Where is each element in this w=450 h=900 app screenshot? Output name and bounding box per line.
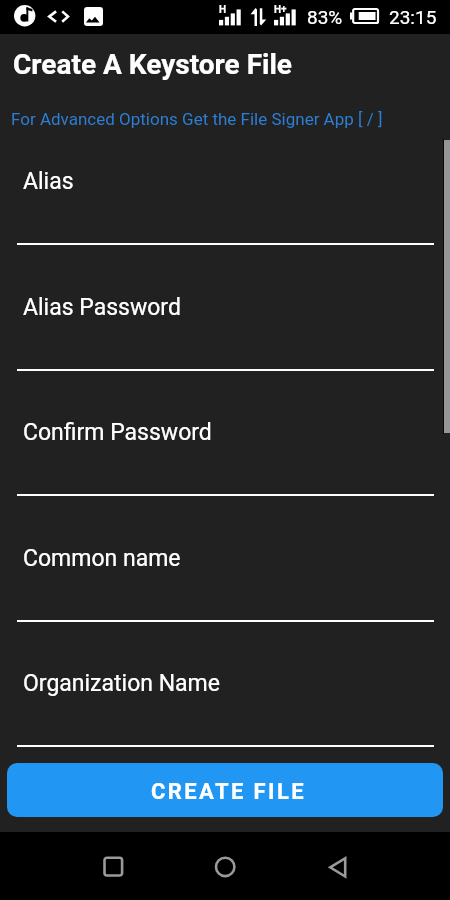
button[interactable]: Organization Name [0, 667, 450, 699]
staticText: Create A Keystore File [13, 48, 293, 81]
staticText: Common name [23, 545, 181, 572]
button[interactable]: Back [314, 842, 362, 890]
staticText: Confirm Password [23, 419, 212, 446]
button[interactable]: Alias Password [0, 291, 450, 323]
staticText: CREATE FILE [151, 779, 306, 805]
staticText: Alias [23, 168, 74, 195]
button[interactable]: CREATE FILE [7, 763, 443, 817]
button[interactable]: Alias [0, 165, 450, 197]
staticText: 83% [307, 6, 343, 28]
button[interactable]: Recents [89, 842, 137, 890]
button[interactable]: Common name [0, 542, 450, 574]
button[interactable]: Home [201, 842, 249, 890]
staticText: Alias Password [23, 294, 181, 321]
staticText: 23:15 [389, 6, 437, 28]
button[interactable]: Confirm Password [0, 416, 450, 448]
staticText: Organization Name [23, 670, 220, 697]
staticText: H+ [274, 4, 287, 16]
staticText: H [219, 4, 227, 16]
staticText: For Advanced Options Get the File Signer… [11, 109, 383, 129]
button[interactable]: For Advanced Options Get the File Signer… [0, 105, 450, 133]
